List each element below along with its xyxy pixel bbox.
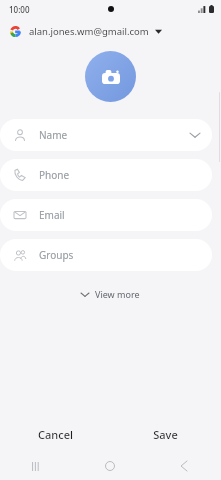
button[interactable]: Groups	[0, 239, 212, 271]
button[interactable]: Cancel	[0, 416, 110, 452]
staticText: alan.jones.wm@gmail.com	[29, 25, 149, 38]
button[interactable]: Save	[110, 416, 221, 452]
button[interactable]: alan.jones.wm@gmail.com	[0, 18, 221, 44]
button[interactable]: Add contact photo	[85, 51, 136, 102]
button[interactable]: Name	[0, 119, 212, 151]
staticText: Cancel	[38, 427, 73, 442]
staticText: View more	[95, 288, 140, 300]
button[interactable]: Recent apps	[0, 452, 73, 480]
staticText: Name	[39, 128, 68, 142]
staticText: Email	[39, 208, 65, 222]
staticText: Save	[153, 427, 178, 442]
button[interactable]: Phone	[0, 159, 212, 191]
staticText: Phone	[39, 168, 70, 182]
button[interactable]: Home	[73, 452, 147, 480]
staticText: 10:00	[9, 4, 30, 15]
button[interactable]: Back	[147, 452, 221, 480]
button[interactable]: View more	[71, 284, 150, 304]
staticText: Groups	[39, 248, 74, 262]
button[interactable]: Email	[0, 199, 212, 231]
